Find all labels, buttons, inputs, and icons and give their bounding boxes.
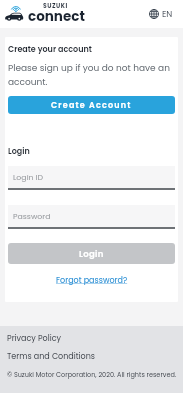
- staticText: Please sign up if you do not have an acc…: [8, 62, 176, 88]
- staticText: Create Account: [51, 100, 132, 111]
- staticText: SUZUKI: [43, 2, 68, 10]
- button[interactable]: Login ID: [8, 166, 175, 188]
- staticText: EN: [162, 8, 173, 20]
- button[interactable]: Privacy Policy: [7, 333, 62, 344]
- staticText: Password: [13, 211, 51, 222]
- staticText: Login: [8, 146, 30, 157]
- staticText: Login: [79, 248, 104, 260]
- button[interactable]: Language: [141, 4, 183, 24]
- staticText: connect: [28, 7, 85, 26]
- button[interactable]: Login: [8, 243, 175, 264]
- staticText: Login ID: [13, 172, 44, 183]
- button[interactable]: Password: [8, 205, 175, 227]
- button[interactable]: Forgot password?: [56, 275, 128, 286]
- staticText: © Suzuki Motor Corporation, 2020. All ri…: [7, 370, 177, 379]
- other: Language: [149, 9, 159, 19]
- button[interactable]: Terms and Conditions: [7, 351, 95, 362]
- staticText: Create your account: [8, 44, 92, 55]
- button[interactable]: Create Account: [8, 96, 175, 114]
